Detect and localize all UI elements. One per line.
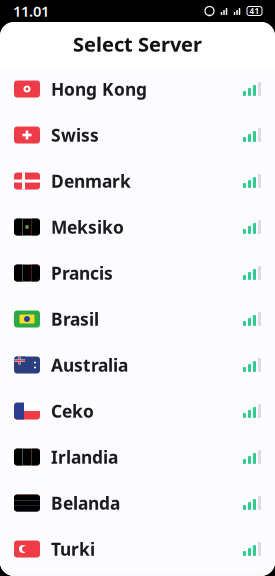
button[interactable]: Hong Kong <box>0 66 275 112</box>
staticText: Hong Kong <box>51 77 147 100</box>
staticText: Brasil <box>51 307 99 330</box>
button[interactable]: Prancis <box>0 250 275 296</box>
staticText: 11.01 <box>13 1 49 21</box>
button[interactable]: Meksiko <box>0 204 275 250</box>
staticText: 41 <box>249 6 259 16</box>
button[interactable]: Belanda <box>0 480 275 526</box>
staticText: Meksiko <box>51 215 124 238</box>
button[interactable]: Turki <box>0 526 275 572</box>
button[interactable]: Denmark <box>0 158 275 204</box>
button[interactable]: Brasil <box>0 296 275 342</box>
button[interactable]: Swiss <box>0 112 275 158</box>
staticText: Swiss <box>51 123 99 146</box>
staticText: Australia <box>51 353 128 376</box>
button[interactable]: Australia <box>0 342 275 388</box>
staticText: Denmark <box>51 169 131 192</box>
staticText: Irlandia <box>51 445 118 468</box>
staticText: Ceko <box>51 399 94 422</box>
button[interactable]: Ceko <box>0 388 275 434</box>
staticText: Belanda <box>51 491 120 514</box>
staticText: Select Server <box>73 31 202 57</box>
button[interactable]: Irlandia <box>0 434 275 480</box>
staticText: Turki <box>51 537 95 560</box>
staticText: Prancis <box>51 261 113 284</box>
